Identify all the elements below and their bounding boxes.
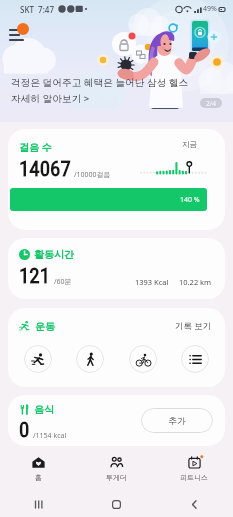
staticText: 지금: [182, 140, 197, 149]
button[interactable]: 홈: [0, 448, 77, 490]
staticText: /10000걸음: [74, 170, 111, 180]
button[interactable]: Menu: [6, 23, 30, 47]
button[interactable]: Walk: [76, 345, 104, 373]
button[interactable]: Home: [77, 492, 155, 517]
button[interactable]: Run: [24, 345, 52, 373]
button[interactable]: 활동시간: [8, 238, 225, 299]
staticText: 투게더: [106, 473, 127, 482]
staticText: 10.22 km: [179, 277, 212, 287]
staticText: 140 %: [180, 195, 200, 205]
staticText: 1393 Kcal: [135, 277, 169, 287]
staticText: 홈: [35, 473, 42, 482]
button[interactable]: More exercises: [181, 345, 209, 373]
button[interactable]: Back: [155, 492, 233, 517]
staticText: 운동: [35, 320, 55, 333]
staticText: 14067: [19, 157, 71, 182]
staticText: /60분: [54, 277, 72, 287]
staticText: 자세히 알아보기 >: [11, 92, 90, 105]
button[interactable]: 기록 보기: [173, 318, 214, 334]
button[interactable]: Recents: [0, 492, 77, 517]
staticText: 121: [19, 264, 51, 289]
staticText: 49%: [203, 4, 217, 14]
staticText: 추가: [168, 415, 186, 426]
button[interactable]: 2/4: [200, 98, 222, 108]
button[interactable]: 추가: [141, 408, 213, 433]
button[interactable]: 투게더: [77, 448, 155, 490]
staticText: 걸음 수: [19, 140, 52, 154]
staticText: 걱정은 덜어주고 혜택은 늘어난 삼성 헬스: [11, 76, 189, 89]
staticText: 2/4: [206, 99, 216, 108]
staticText: /1154 kcal: [33, 431, 67, 441]
button[interactable]: 걸음 수: [8, 129, 225, 230]
staticText: 0: [19, 418, 30, 443]
button[interactable]: Cycle: [129, 345, 157, 373]
staticText: SKT 7:47: [20, 4, 55, 15]
button[interactable]: 피트니스: [155, 448, 233, 490]
staticText: 활동시간: [34, 248, 74, 261]
staticText: 피트니스: [180, 473, 208, 482]
staticText: 음식: [34, 403, 54, 416]
staticText: 기록 보기: [175, 320, 212, 332]
